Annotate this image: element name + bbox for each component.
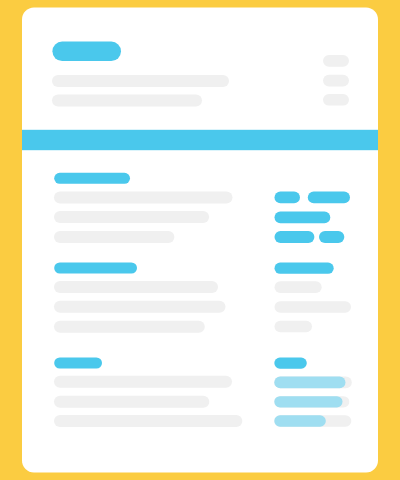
button[interactable]: List item 1 <box>22 150 378 240</box>
button[interactable]: List item 3 <box>22 335 378 472</box>
button[interactable]: Card header <box>22 8 378 130</box>
button[interactable]: List item 2 <box>22 240 378 335</box>
